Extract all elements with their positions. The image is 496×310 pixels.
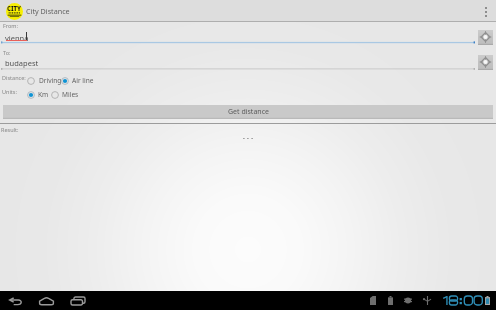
staticText: To: — [3, 49, 11, 56]
staticText: Miles — [62, 90, 79, 99]
staticText: Distance: — [2, 74, 26, 81]
button[interactable]: Get distance — [3, 105, 493, 119]
staticText: budapest — [5, 58, 39, 68]
button[interactable]: Recent apps — [65, 291, 91, 310]
button[interactable]: Use current location — [478, 30, 493, 45]
button[interactable]: Home — [34, 291, 59, 310]
button[interactable]: Driving — [27, 76, 61, 86]
button[interactable]: Miles — [51, 90, 84, 100]
staticText: Driving — [39, 76, 62, 85]
staticText: Km — [38, 90, 49, 99]
staticText: vienna — [5, 33, 29, 43]
button[interactable]: Back — [3, 291, 28, 310]
button[interactable]: Km — [27, 90, 60, 100]
staticText: City Distance — [26, 6, 70, 16]
button[interactable]: Use current location — [478, 55, 493, 70]
staticText: Air line — [72, 76, 94, 85]
staticText: Units: — [2, 88, 17, 95]
staticText: - - - — [0, 133, 496, 143]
button[interactable]: Air line — [61, 76, 94, 86]
button[interactable]: More options — [476, 1, 496, 22]
staticText: Get distance — [228, 107, 269, 117]
staticText: From: — [3, 22, 18, 29]
staticText: Result: — [1, 126, 19, 133]
staticText: CITY — [7, 5, 22, 13]
